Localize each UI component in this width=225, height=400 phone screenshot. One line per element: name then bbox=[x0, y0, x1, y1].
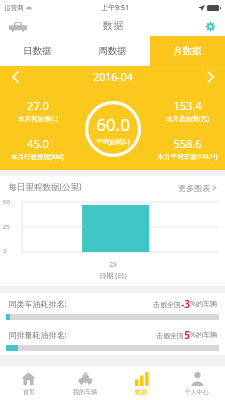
button[interactable]: Settings bbox=[201, 17, 219, 35]
staticText: 本月平均车速(KM/H) bbox=[157, 152, 218, 161]
staticText: 日数据 bbox=[23, 45, 52, 57]
staticText: 60.0 bbox=[96, 113, 130, 136]
button[interactable]: 数据 bbox=[113, 366, 169, 400]
button[interactable]: 更多图表 > bbox=[178, 182, 217, 193]
staticText: 运营商 bbox=[4, 4, 24, 12]
staticText: 周数据 bbox=[98, 45, 127, 57]
staticText: 153.4 bbox=[173, 98, 202, 113]
staticText: 0 bbox=[3, 247, 7, 255]
staticText: 25 bbox=[3, 223, 10, 231]
staticText: 29 bbox=[109, 260, 117, 269]
staticText: 个人中心 bbox=[185, 388, 209, 396]
staticText: 5 bbox=[184, 328, 190, 342]
staticText: 50 bbox=[3, 198, 10, 206]
staticText: 2016-04 bbox=[93, 70, 133, 84]
staticText: 日期 (日) bbox=[99, 271, 127, 281]
staticText: 45.0 bbox=[27, 136, 49, 151]
button[interactable]: Previous month bbox=[4, 66, 26, 88]
button[interactable]: 月数据 bbox=[150, 36, 225, 66]
staticText: 同类车油耗排名: bbox=[8, 298, 67, 309]
staticText: 数据 bbox=[103, 19, 123, 32]
staticText: 首页 bbox=[23, 388, 35, 396]
button[interactable]: 我的车辆 bbox=[57, 366, 113, 400]
staticText: %的车辆 bbox=[190, 330, 217, 340]
button[interactable]: 首页 bbox=[0, 366, 57, 400]
staticText: 本月行驶里程(KM) bbox=[11, 152, 64, 161]
staticText: 同排量耗油排名: bbox=[8, 329, 67, 340]
staticText: 本月总油费(元) bbox=[166, 114, 209, 123]
staticText: 击败全国 bbox=[153, 300, 181, 309]
button[interactable]: Next month bbox=[199, 66, 221, 88]
staticText: 27.0 bbox=[27, 98, 49, 113]
staticText: 更多图表 > bbox=[178, 182, 217, 193]
staticText: %的车辆 bbox=[190, 299, 217, 309]
staticText: 数据 bbox=[135, 388, 147, 396]
staticText: 558.6 bbox=[173, 136, 202, 151]
button[interactable]: 日数据 bbox=[0, 36, 75, 66]
staticText: 平均油耗(L) bbox=[96, 137, 130, 146]
button[interactable]: 个人中心 bbox=[169, 366, 225, 400]
staticText: -3 bbox=[181, 297, 190, 311]
staticText: 本月耗油量(L) bbox=[18, 114, 58, 123]
staticText: 每日里程数据(公里) bbox=[8, 181, 82, 193]
staticText: 上午9:51 bbox=[101, 3, 129, 13]
staticText: 我的车辆 bbox=[73, 388, 97, 396]
button[interactable]: 同排量耗油排名: bbox=[0, 324, 225, 355]
staticText: 月数据 bbox=[173, 45, 202, 57]
button[interactable]: My car bbox=[5, 17, 31, 35]
button[interactable]: 同类车油耗排名: bbox=[0, 293, 225, 324]
staticText: 击败全国 bbox=[156, 331, 184, 340]
button[interactable]: 周数据 bbox=[75, 36, 150, 66]
